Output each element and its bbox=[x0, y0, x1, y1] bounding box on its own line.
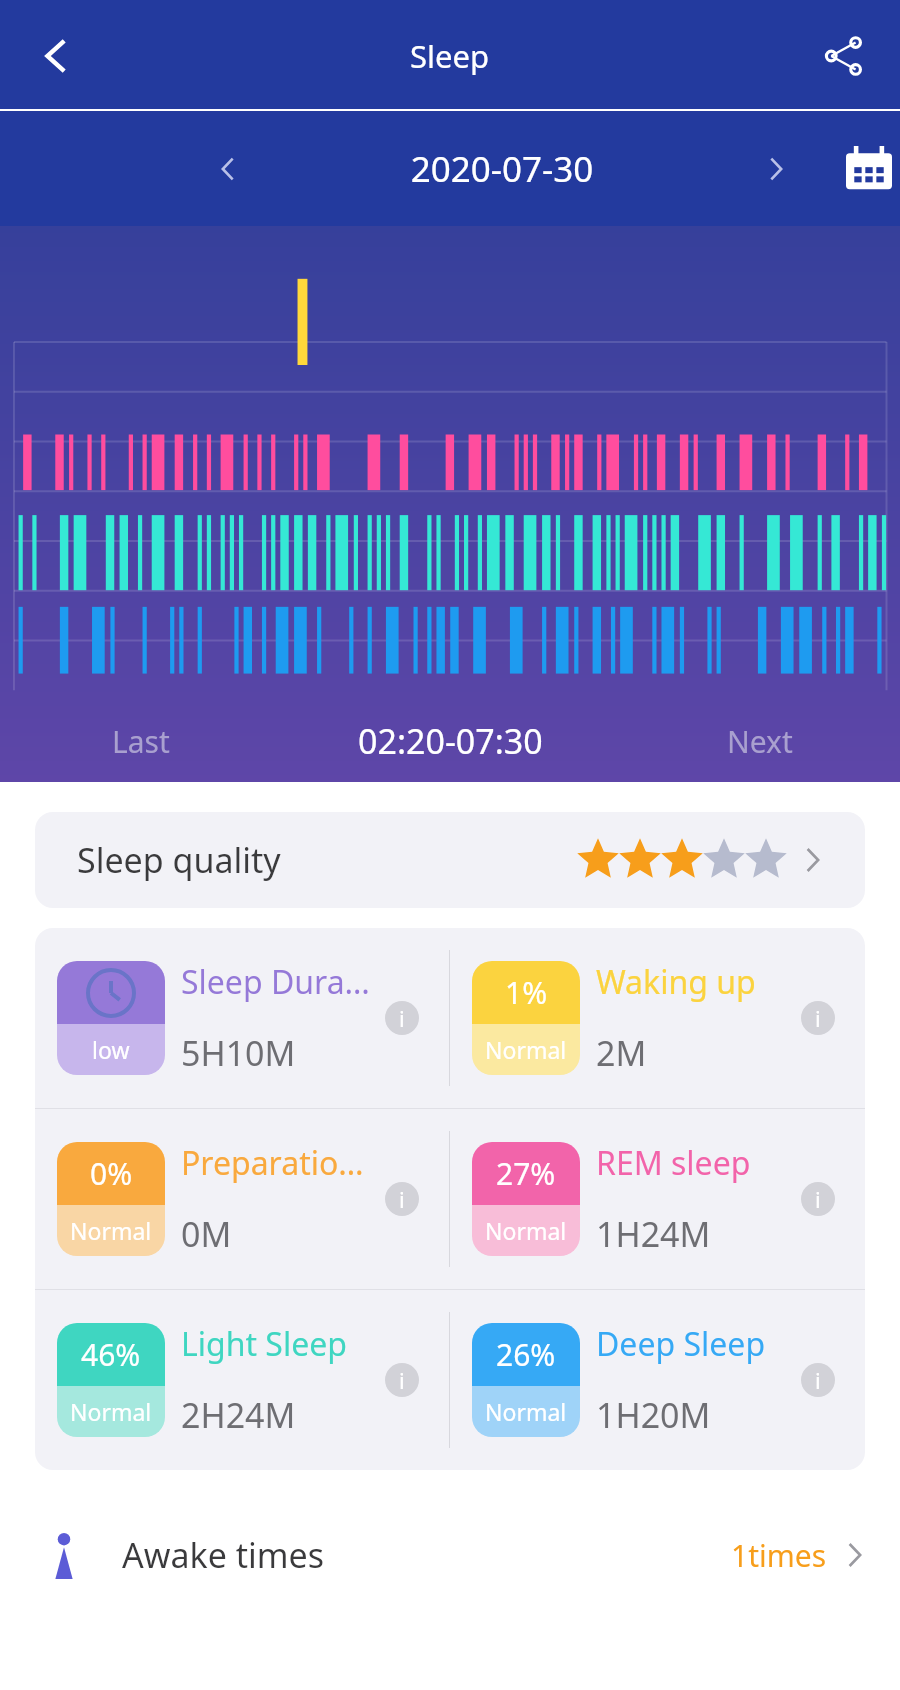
staticText: 2020-07-30 bbox=[256, 145, 748, 193]
button[interactable]: Info bbox=[801, 1001, 835, 1035]
button[interactable]: Share bbox=[808, 21, 878, 91]
button[interactable]: 1% bbox=[450, 928, 865, 1108]
button[interactable]: 46% bbox=[35, 1290, 449, 1470]
button[interactable]: Calendar bbox=[838, 138, 900, 200]
staticText: 1H24M bbox=[596, 1211, 711, 1257]
button[interactable]: low bbox=[35, 928, 449, 1108]
staticText: Normal bbox=[485, 1396, 567, 1427]
staticText: Light Sleep bbox=[181, 1322, 347, 1366]
button[interactable]: Previous day bbox=[200, 141, 256, 197]
staticText: 1H20M bbox=[596, 1392, 711, 1438]
staticText: 0M bbox=[181, 1211, 232, 1257]
staticText: i bbox=[815, 1003, 821, 1033]
button[interactable]: 27% bbox=[450, 1109, 865, 1289]
staticText: Next bbox=[727, 721, 793, 762]
staticText: i bbox=[399, 1365, 405, 1395]
staticText: Sleep quality bbox=[77, 837, 281, 883]
staticText: Last bbox=[112, 721, 170, 762]
button[interactable]: Next bbox=[619, 721, 900, 762]
button[interactable]: Info bbox=[385, 1182, 419, 1216]
staticText: i bbox=[399, 1003, 405, 1033]
button[interactable]: Info bbox=[385, 1363, 419, 1397]
staticText: 26% bbox=[496, 1334, 556, 1375]
staticText: 1% bbox=[505, 972, 548, 1013]
staticText: i bbox=[815, 1365, 821, 1395]
staticText: 2H24M bbox=[181, 1392, 296, 1438]
staticText: i bbox=[399, 1184, 405, 1214]
staticText: low bbox=[92, 1034, 130, 1065]
staticText: i bbox=[815, 1184, 821, 1214]
staticText: 46% bbox=[81, 1334, 141, 1375]
button[interactable]: Next day bbox=[748, 141, 804, 197]
staticText: Sleep Dura… bbox=[181, 960, 370, 1004]
staticText: Normal bbox=[70, 1396, 152, 1427]
staticText: Waking up bbox=[596, 960, 756, 1004]
button[interactable]: Info bbox=[801, 1363, 835, 1397]
button[interactable]: Info bbox=[801, 1182, 835, 1216]
staticText: Awake times bbox=[122, 1532, 324, 1578]
button[interactable]: Info bbox=[385, 1001, 419, 1035]
button[interactable]: Last bbox=[0, 721, 281, 762]
staticText: Normal bbox=[485, 1215, 567, 1246]
staticText: 02:20-07:30 bbox=[358, 718, 543, 764]
staticText: 5H10M bbox=[181, 1030, 296, 1076]
button[interactable]: Sleep quality bbox=[35, 812, 865, 908]
button[interactable]: Awake times bbox=[0, 1510, 900, 1600]
button[interactable]: 0% bbox=[35, 1109, 449, 1289]
button[interactable]: Back bbox=[22, 21, 92, 91]
staticText: 1times bbox=[731, 1535, 827, 1576]
staticText: 0% bbox=[90, 1153, 133, 1194]
staticText: 2M bbox=[596, 1030, 647, 1076]
staticText: Deep Sleep bbox=[596, 1322, 766, 1366]
staticText: Normal bbox=[485, 1034, 567, 1065]
staticText: Preparatio… bbox=[181, 1141, 364, 1185]
staticText: Normal bbox=[70, 1215, 152, 1246]
button[interactable]: 26% bbox=[450, 1290, 865, 1470]
staticText: Sleep bbox=[410, 35, 490, 77]
staticText: REM sleep bbox=[596, 1141, 751, 1185]
staticText: 27% bbox=[496, 1153, 556, 1194]
